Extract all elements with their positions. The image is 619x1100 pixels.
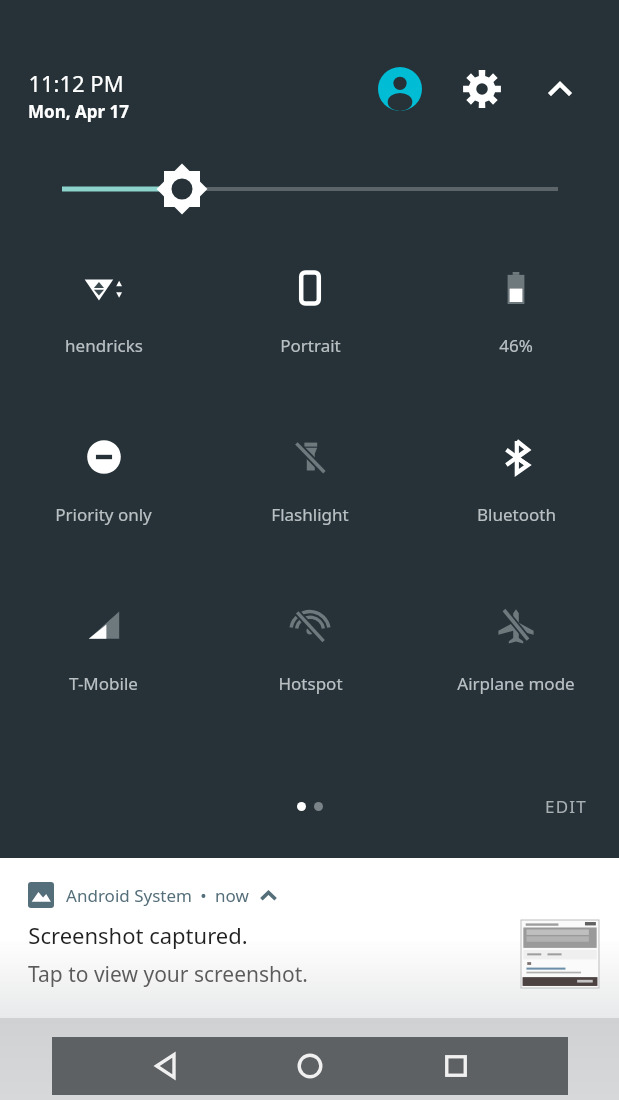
button[interactable]: Priority only <box>0 431 207 530</box>
staticText: 46% <box>499 334 533 357</box>
staticText: Mon, Apr 17 <box>28 100 129 123</box>
button[interactable]: User profile <box>373 62 427 116</box>
button[interactable]: Airplane mode <box>413 600 619 699</box>
button[interactable]: T-Mobile <box>0 600 207 699</box>
button[interactable]: EDIT <box>533 787 599 826</box>
button[interactable]: Settings <box>455 62 509 116</box>
staticText: Screenshot captured. <box>28 920 248 950</box>
button[interactable]: 46% <box>413 262 619 361</box>
staticText: hendricks <box>65 334 143 357</box>
button[interactable]: Portrait <box>207 262 413 361</box>
staticText: Android System <box>66 884 192 907</box>
button[interactable]: Android System <box>0 858 619 1018</box>
button[interactable]: Back <box>132 1037 198 1095</box>
button[interactable]: Flashlight <box>207 431 413 530</box>
button[interactable]: Hotspot <box>207 600 413 699</box>
staticText: Flashlight <box>271 503 349 526</box>
staticText: • <box>200 884 207 907</box>
button[interactable]: Recent apps <box>423 1037 489 1095</box>
staticText: Portrait <box>280 334 341 357</box>
staticText: Bluetooth <box>477 503 556 526</box>
staticText: Hotspot <box>278 672 343 695</box>
staticText: Tap to view your screenshot. <box>28 960 308 989</box>
staticText: Priority only <box>55 503 152 526</box>
button[interactable]: Home <box>277 1037 343 1095</box>
staticText: EDIT <box>545 795 587 818</box>
button[interactable]: Bluetooth <box>413 431 619 530</box>
staticText: now <box>215 884 249 907</box>
button[interactable]: Brightness <box>0 158 619 220</box>
staticText: 11:12 PM <box>28 68 124 98</box>
staticText: Airplane mode <box>457 672 575 695</box>
staticText: T-Mobile <box>69 672 138 695</box>
button[interactable]: Collapse <box>535 64 585 114</box>
button[interactable]: hendricks <box>0 262 207 361</box>
